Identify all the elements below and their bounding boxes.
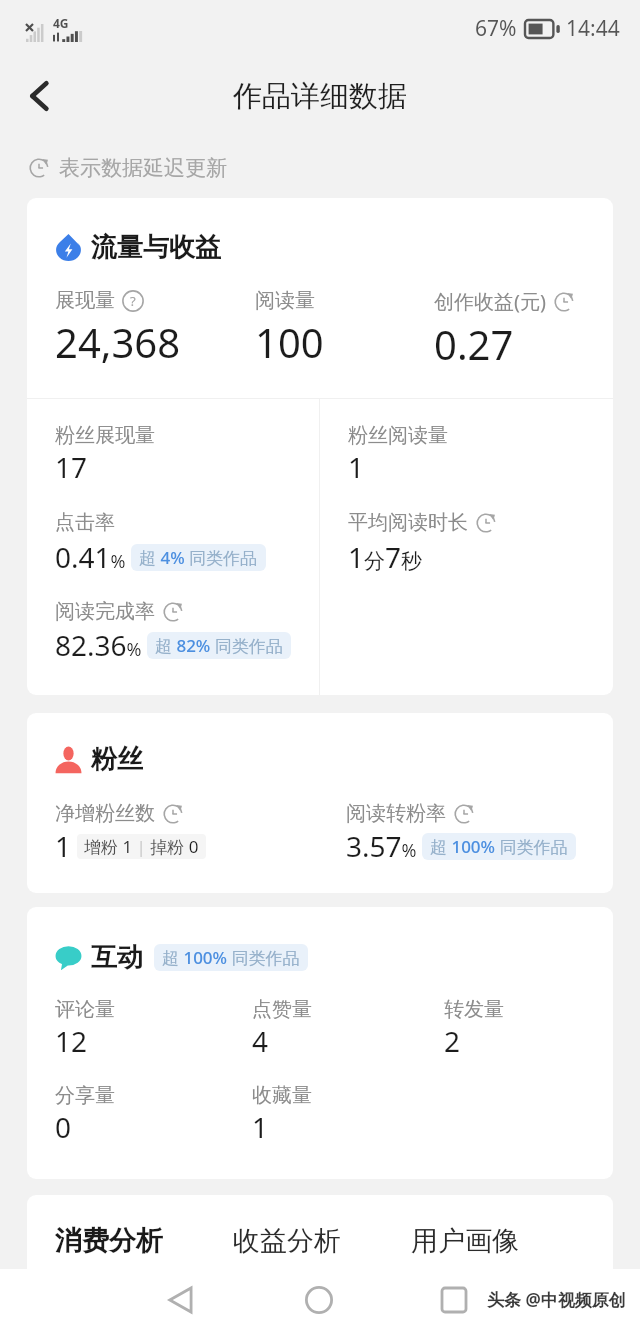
button[interactable]: Recents bbox=[430, 1276, 478, 1324]
button[interactable]: Back bbox=[157, 1276, 205, 1324]
staticText: 3.57% bbox=[346, 827, 417, 865]
staticText: 4 bbox=[252, 1022, 269, 1060]
staticText: 24,368 bbox=[55, 315, 181, 369]
staticText: 2 bbox=[444, 1022, 461, 1060]
button[interactable]: 收益分析 bbox=[233, 1224, 341, 1258]
staticText: 互动 bbox=[91, 941, 143, 974]
staticText: 平均阅读时长 bbox=[348, 510, 468, 535]
staticText: 创作收益(元) bbox=[434, 288, 546, 315]
staticText: 超 100% 同类作品 bbox=[430, 835, 568, 858]
staticText: 流量与收益 bbox=[91, 231, 221, 264]
staticText: 用户画像 bbox=[411, 1224, 519, 1258]
staticText: 粉丝 bbox=[91, 743, 143, 776]
staticText: 分享量 bbox=[55, 1083, 115, 1108]
button[interactable]: 消费分析 bbox=[55, 1224, 163, 1258]
staticText: 净增粉丝数 bbox=[55, 801, 155, 826]
staticText: 0.41% bbox=[55, 538, 126, 576]
staticText: 评论量 bbox=[55, 997, 115, 1022]
staticText: 粉丝阅读量 bbox=[348, 423, 448, 448]
staticText: 头条 @中视频原创 bbox=[487, 1288, 626, 1311]
staticText: 82.36% bbox=[55, 626, 142, 664]
button[interactable]: 用户画像 bbox=[411, 1224, 519, 1258]
staticText: 展现量 bbox=[55, 288, 115, 313]
staticText: 1 bbox=[252, 1108, 269, 1146]
staticText: 100 bbox=[255, 315, 324, 369]
staticText: 14:44 bbox=[566, 14, 620, 43]
staticText: 阅读转粉率 bbox=[346, 801, 446, 826]
staticText: 粉丝展现量 bbox=[55, 423, 155, 448]
staticText: 超 82% 同类作品 bbox=[155, 634, 283, 657]
staticText: 表示数据延迟更新 bbox=[59, 155, 227, 181]
staticText: 0.27 bbox=[434, 317, 514, 371]
staticText: 作品详细数据 bbox=[233, 78, 407, 115]
staticText: 收藏量 bbox=[252, 1083, 312, 1108]
staticText: 消费分析 bbox=[55, 1224, 163, 1258]
staticText: 增粉 1 | 掉粉 0 bbox=[84, 835, 199, 858]
staticText: 点赞量 bbox=[252, 997, 312, 1022]
staticText: 1 bbox=[55, 827, 72, 865]
staticText: 1 bbox=[348, 448, 365, 486]
button[interactable]: Home bbox=[295, 1276, 343, 1324]
staticText: 超 100% 同类作品 bbox=[162, 946, 300, 969]
staticText: 67% bbox=[475, 14, 517, 43]
staticText: 点击率 bbox=[55, 510, 115, 535]
staticText: 1分7秒 bbox=[348, 538, 423, 576]
staticText: ? bbox=[130, 292, 136, 310]
staticText: 4G bbox=[53, 15, 69, 31]
staticText: 阅读量 bbox=[255, 288, 315, 313]
staticText: 阅读完成率 bbox=[55, 599, 155, 624]
staticText: 转发量 bbox=[444, 997, 504, 1022]
staticText: 17 bbox=[55, 448, 88, 486]
staticText: 12 bbox=[55, 1022, 88, 1060]
button[interactable]: Back bbox=[12, 68, 68, 124]
staticText: 超 4% 同类作品 bbox=[139, 546, 258, 569]
staticText: 收益分析 bbox=[233, 1224, 341, 1258]
staticText: 0 bbox=[55, 1108, 72, 1146]
